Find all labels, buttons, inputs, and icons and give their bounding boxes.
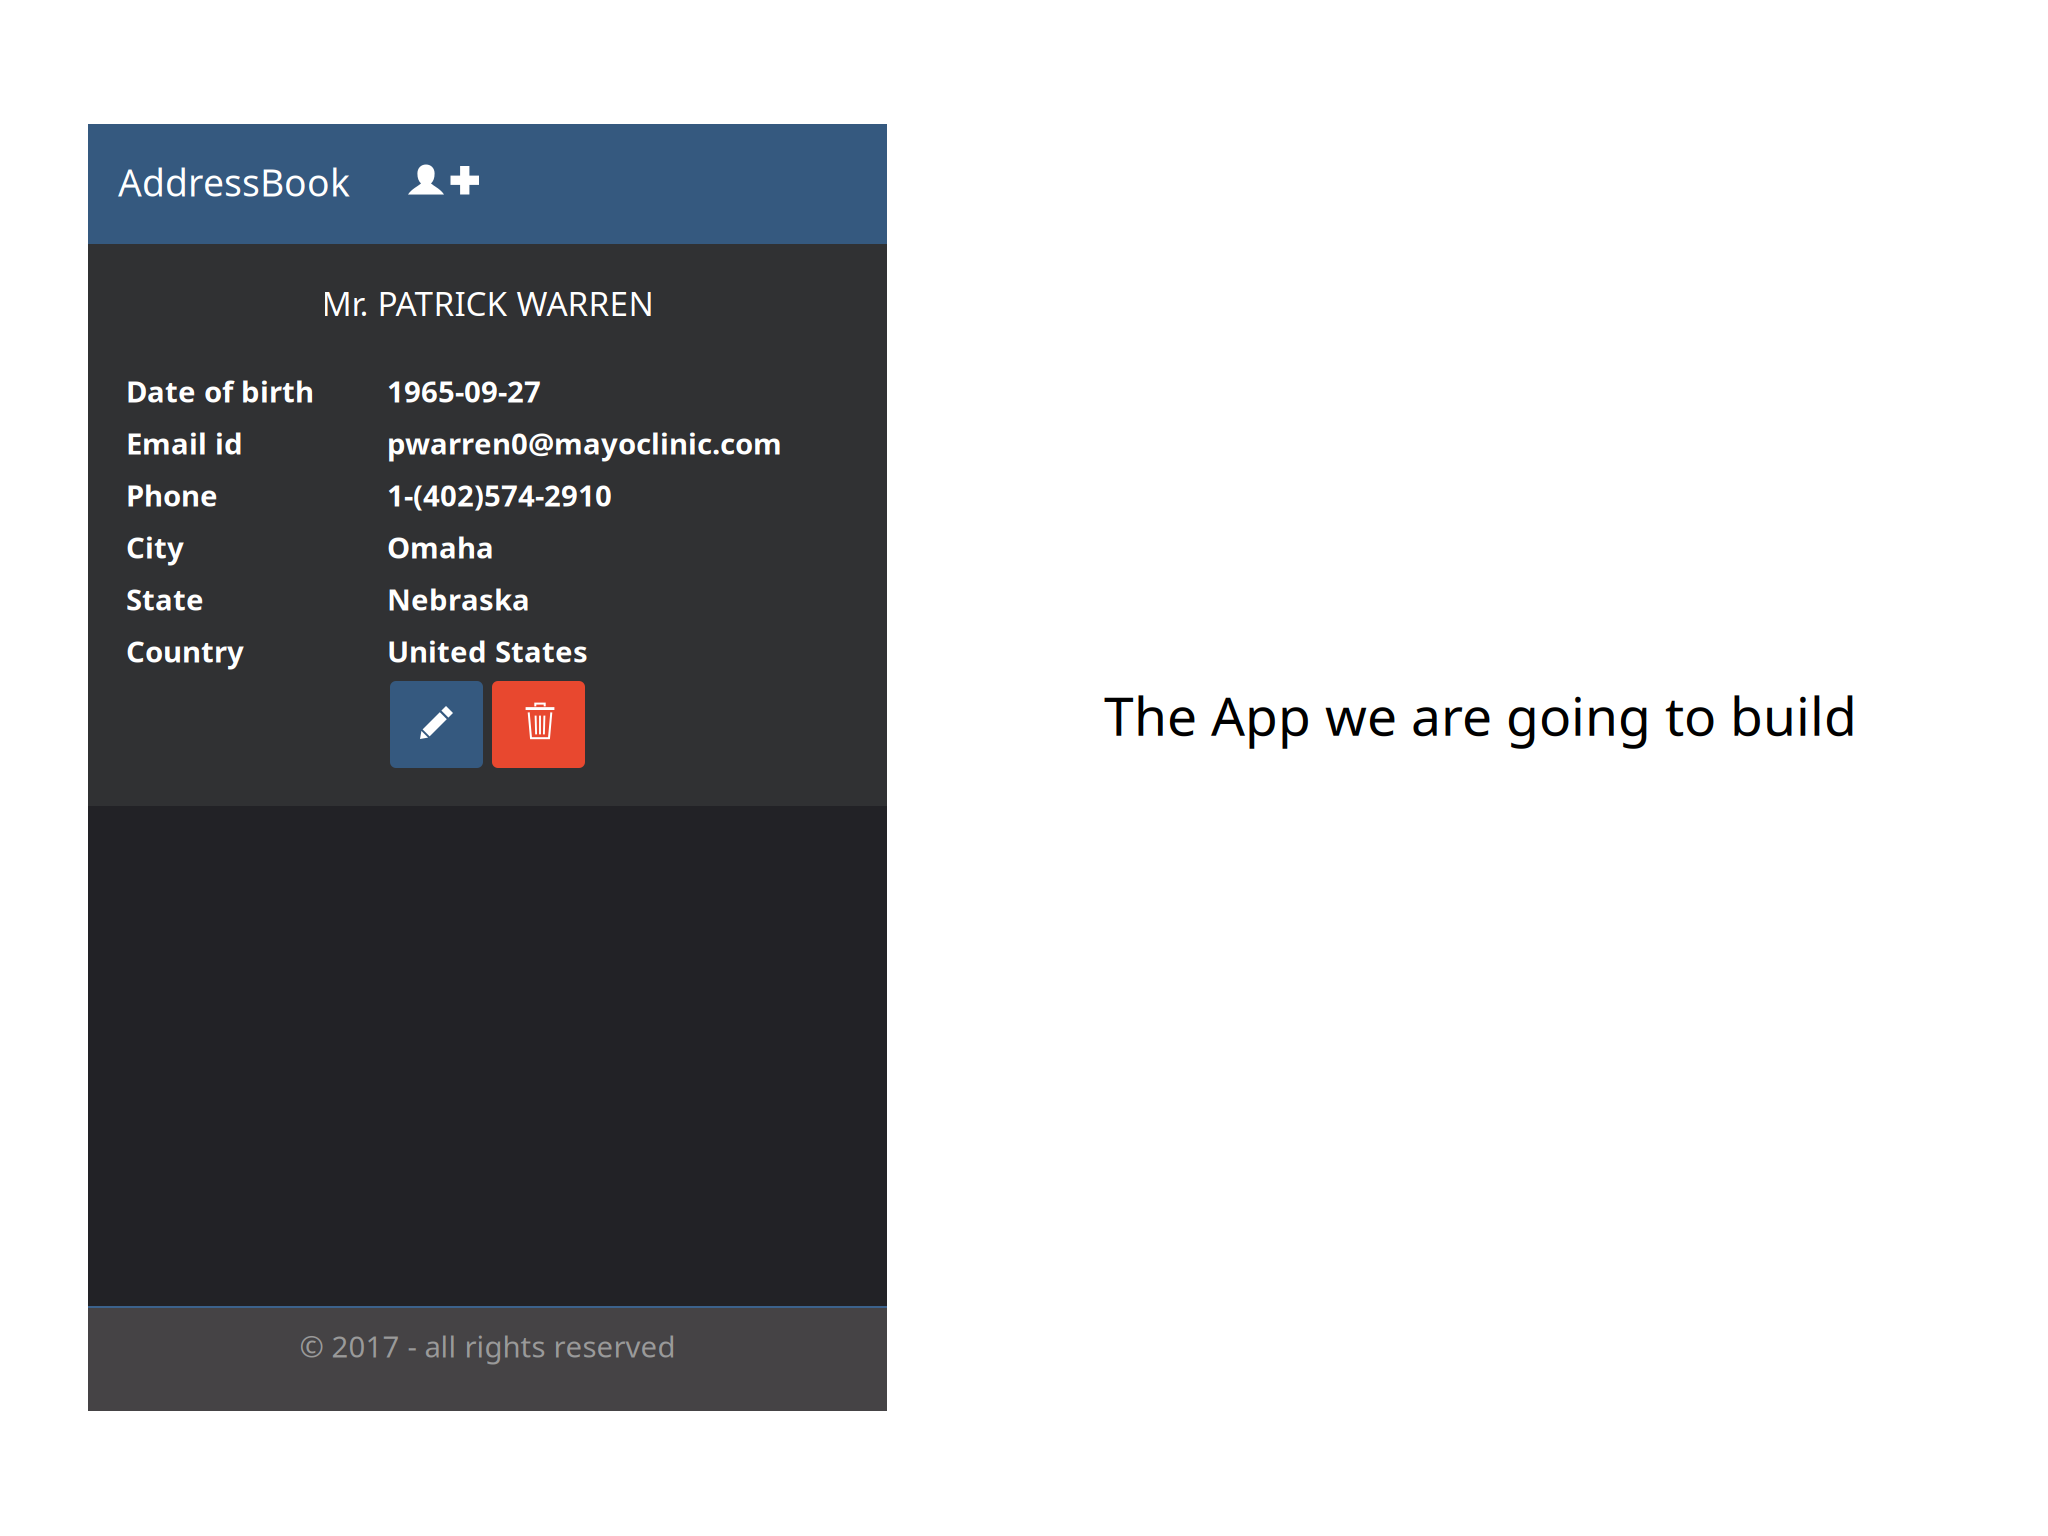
staticText: Phone xyxy=(126,475,218,514)
button[interactable]: Add contact xyxy=(408,164,478,195)
staticText: The App we are going to build xyxy=(1104,680,1857,750)
staticText: AddressBook xyxy=(118,157,350,207)
staticText: Nebraska xyxy=(387,579,530,618)
staticText: 1965-09-27 xyxy=(387,371,541,410)
staticText: City xyxy=(126,527,184,566)
staticText: Email id xyxy=(126,423,243,462)
staticText: Date of birth xyxy=(126,371,314,410)
staticText: 1-(402)574-2910 xyxy=(387,475,612,514)
staticText: © 2017 - all rights reserved xyxy=(299,1326,675,1365)
staticText: Omaha xyxy=(387,527,494,566)
staticText: Country xyxy=(126,631,244,670)
staticText: Mr. PATRICK WARREN xyxy=(321,281,653,325)
staticText: pwarren0@mayoclinic.com xyxy=(387,423,782,462)
button[interactable]: Delete contact xyxy=(492,681,585,768)
button[interactable]: Edit contact xyxy=(390,681,483,768)
staticText: State xyxy=(126,579,204,618)
staticText: United States xyxy=(387,631,588,670)
